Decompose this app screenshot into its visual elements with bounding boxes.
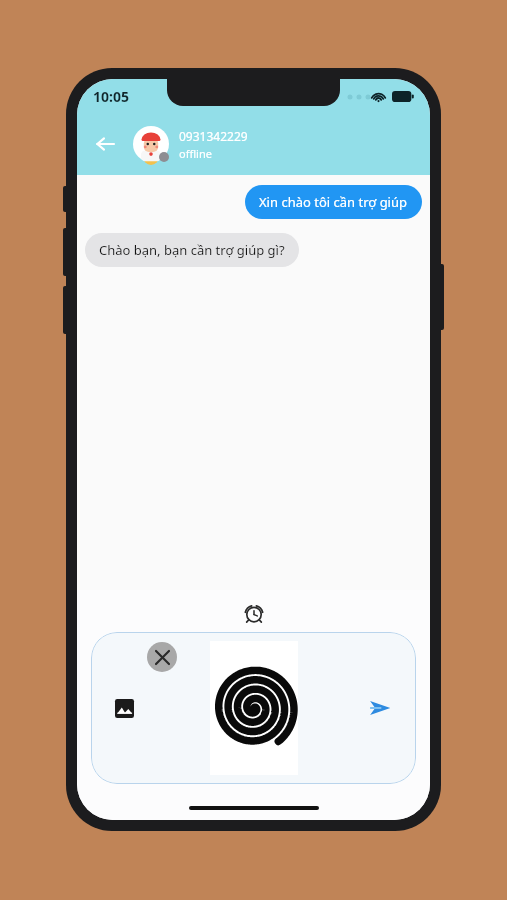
button[interactable]: Send	[362, 690, 398, 726]
button[interactable]: 0931342229	[179, 128, 248, 161]
staticText: 10:05	[93, 87, 129, 106]
staticText: Chào bạn, bạn cần trợ giúp gì?	[99, 241, 285, 259]
button[interactable]: Attach image	[107, 691, 141, 725]
staticText: 0931342229	[179, 128, 248, 144]
button[interactable]: Back	[85, 124, 125, 164]
button[interactable]: Chào bạn, bạn cần trợ giúp gì?	[85, 233, 299, 267]
button[interactable]: Contact avatar	[133, 126, 169, 162]
button[interactable]: Timer	[239, 598, 269, 628]
button[interactable]: Remove attachment	[147, 642, 177, 672]
button[interactable]: Xin chào tôi cần trợ giúp	[245, 185, 422, 219]
staticText: offline	[179, 146, 212, 161]
staticText: Xin chào tôi cần trợ giúp	[259, 193, 408, 211]
